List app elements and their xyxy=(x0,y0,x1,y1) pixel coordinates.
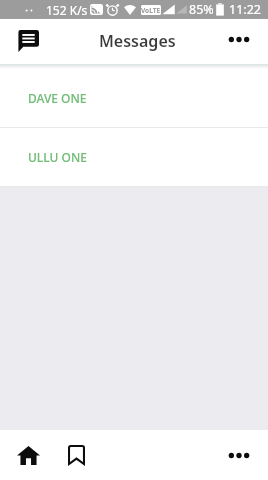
staticText: 85% xyxy=(189,1,214,18)
staticText: Messages xyxy=(99,30,176,52)
staticText: 152 K/s xyxy=(46,2,88,18)
staticText: VoLTE xyxy=(141,6,161,15)
staticText: 11:22 xyxy=(229,1,261,18)
button[interactable]: Bookmarks xyxy=(60,439,92,471)
button[interactable]: More options xyxy=(224,24,254,54)
button[interactable]: DAVE ONE xyxy=(0,69,268,128)
staticText: DAVE ONE xyxy=(28,90,87,106)
button[interactable]: Home xyxy=(12,439,44,471)
button[interactable]: More xyxy=(223,439,255,471)
button[interactable]: Messages xyxy=(13,26,43,56)
button[interactable]: ULLU ONE xyxy=(0,128,268,187)
staticText: ULLU ONE xyxy=(28,149,87,165)
